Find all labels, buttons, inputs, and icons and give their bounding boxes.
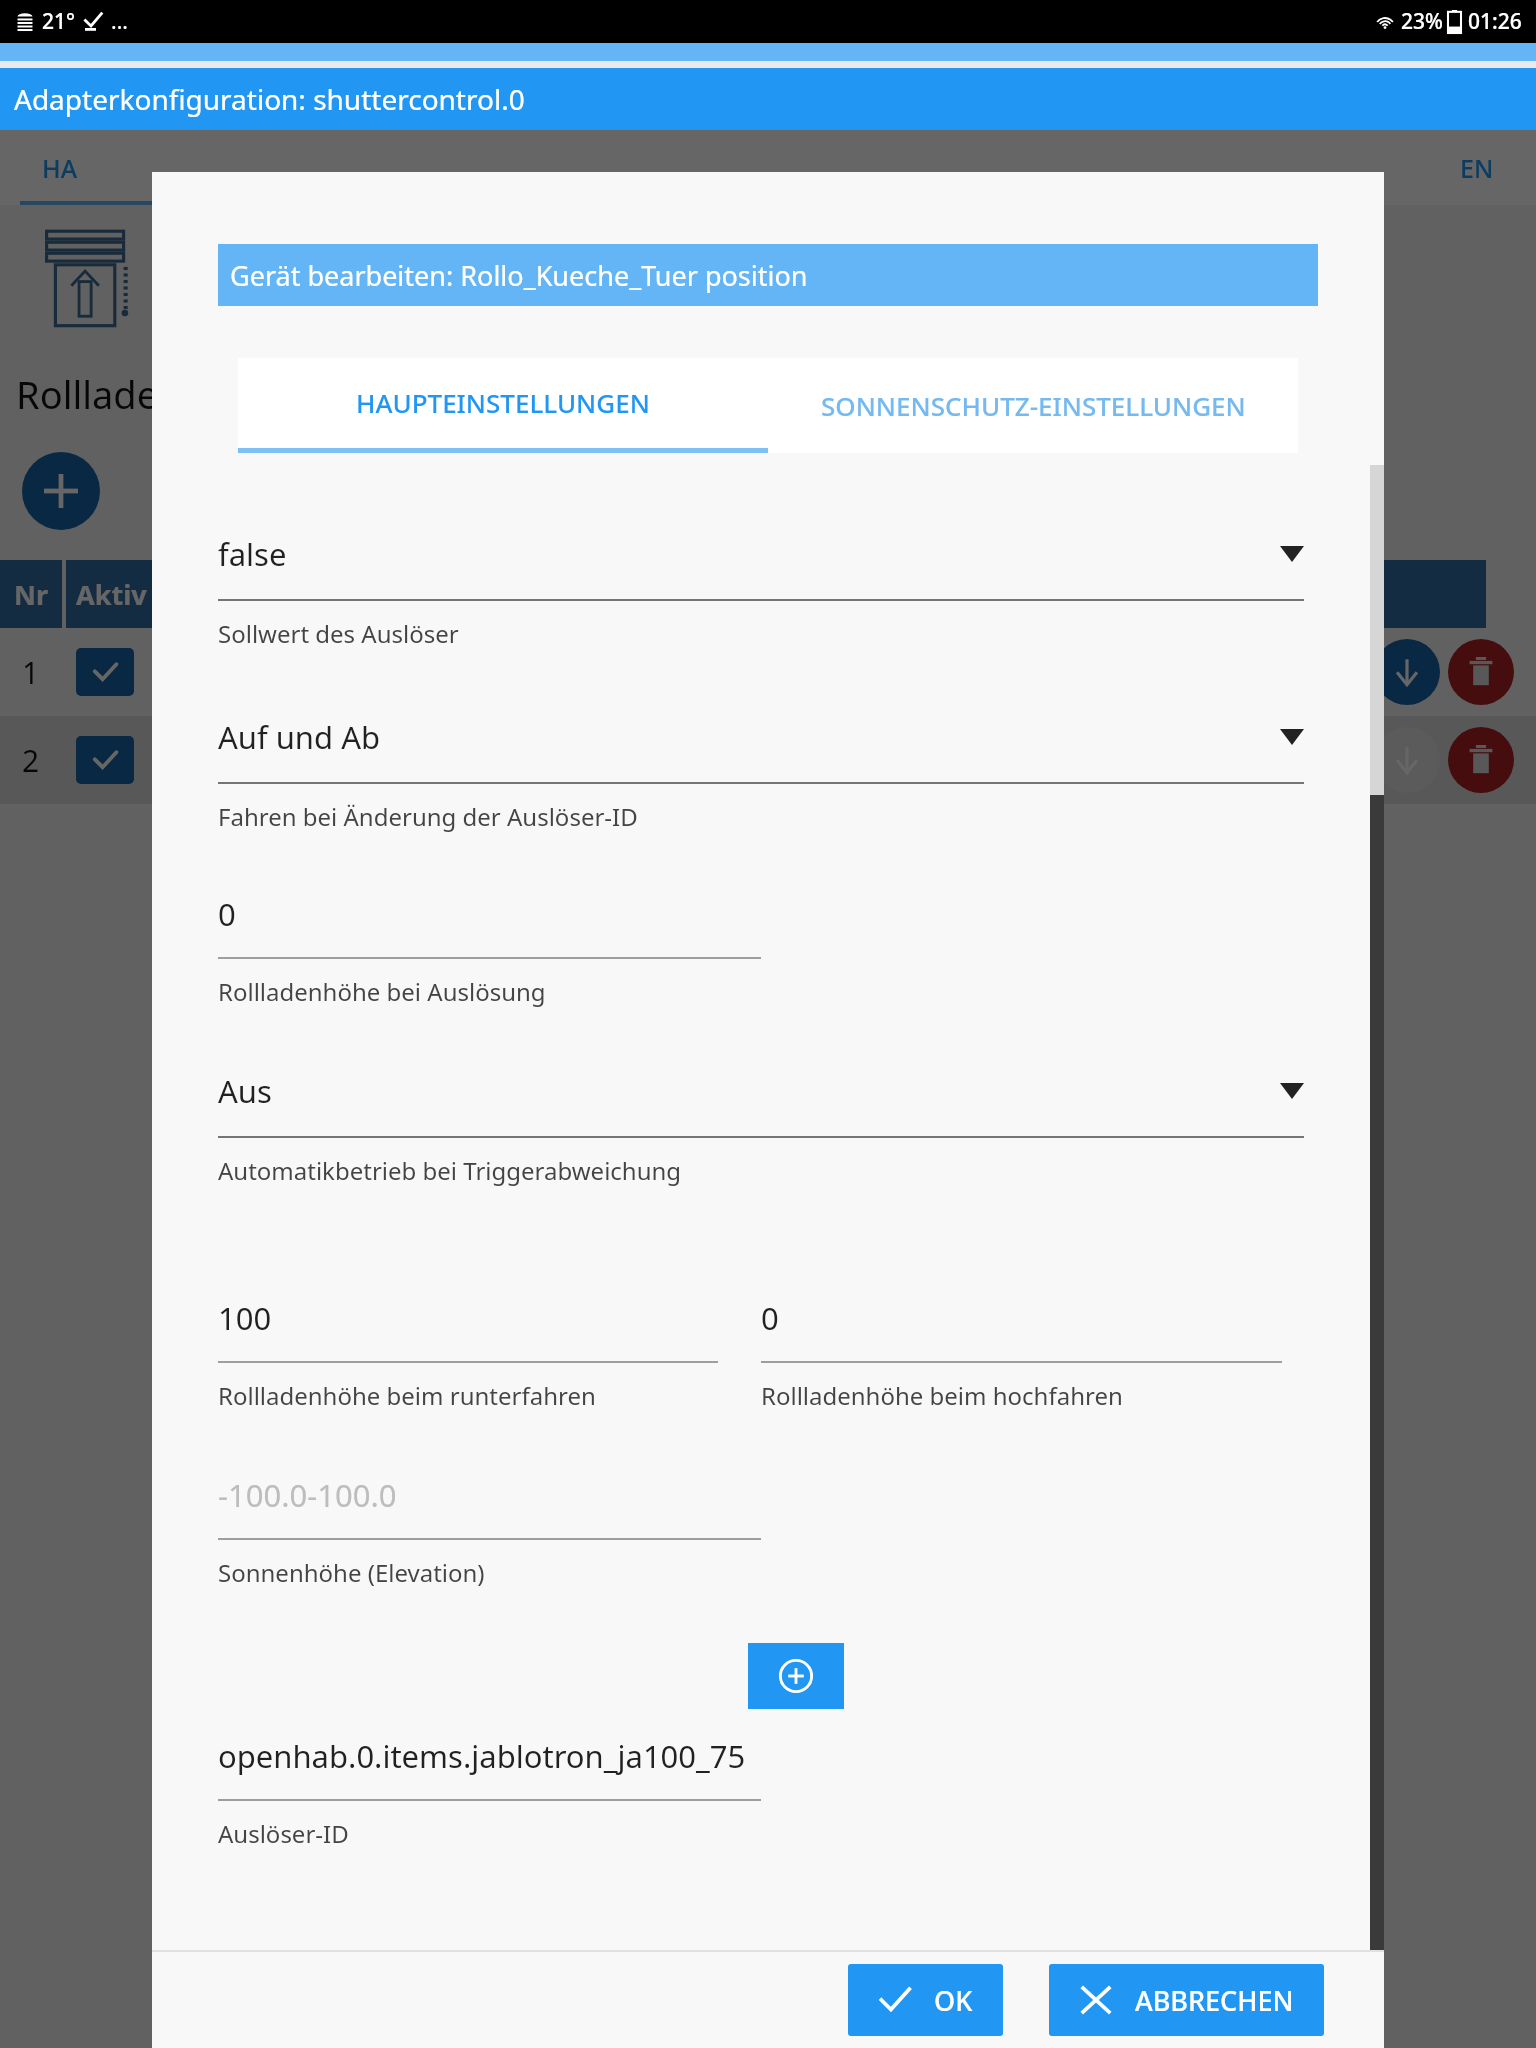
staticText: SONNENSCHUTZ-EINSTELLUNGEN <box>821 388 1246 423</box>
staticText: Sollwert des Auslöser <box>218 617 459 650</box>
button[interactable]: OK <box>848 1964 1003 2036</box>
button[interactable]: 2 <box>0 716 1536 804</box>
staticText: Nr <box>14 576 49 613</box>
staticText: ... <box>111 7 128 36</box>
staticText: Adapterkonfiguration: shuttercontrol.0 <box>14 80 525 118</box>
button[interactable]: -100.0-100.0 <box>218 1474 1304 1589</box>
staticText: Automatikbetrieb bei Triggerabweichung <box>218 1154 682 1187</box>
button[interactable]: openhab.0.items.jablotron_ja100_75 <box>218 1735 1304 1850</box>
staticText: 100 <box>218 1297 272 1339</box>
button[interactable]: Löschen <box>1448 727 1514 793</box>
staticText: Rollladenhöhe bei Auslösung <box>218 975 546 1008</box>
staticText: Auf und Ab <box>218 716 381 758</box>
staticText: Rollladenhöhe beim hochfahren <box>761 1379 1123 1412</box>
button[interactable]: ABBRECHEN <box>1049 1964 1324 2036</box>
button[interactable]: HAUPTEINSTELLUNGEN <box>238 358 768 453</box>
button[interactable]: Nach unten <box>1374 727 1440 793</box>
staticText: 01:26 <box>1468 7 1522 36</box>
staticText: 23% <box>1401 7 1443 36</box>
button[interactable]: Nach unten <box>1374 639 1440 705</box>
button[interactable]: false <box>218 533 1304 650</box>
staticText: Rolllade <box>16 368 159 420</box>
button[interactable]: SONNENSCHUTZ-EINSTELLUNGEN <box>768 358 1298 453</box>
staticText: 2 <box>22 740 40 781</box>
staticText: Fahren bei Änderung der Auslöser-ID <box>218 800 638 833</box>
button[interactable]: Löschen <box>1448 639 1514 705</box>
button[interactable]: 100 <box>218 1297 761 1412</box>
staticText: EN <box>1460 151 1494 185</box>
button[interactable]: Auf und Ab <box>218 716 1304 833</box>
staticText: openhab.0.items.jablotron_ja100_75 <box>218 1735 746 1777</box>
staticText: 21° <box>42 7 75 36</box>
staticText: ABBRECHEN <box>1135 1982 1294 2019</box>
button[interactable]: 0 <box>761 1297 1304 1412</box>
staticText: OK <box>934 1982 973 2019</box>
staticText: Rollladenhöhe beim runterfahren <box>218 1379 596 1412</box>
staticText: 0 <box>218 893 236 935</box>
button[interactable]: Aus <box>218 1070 1304 1187</box>
staticText: 1 <box>22 652 40 693</box>
staticText: HAUPTEINSTELLUNGEN <box>356 385 650 420</box>
staticText: Sonnenhöhe (Elevation) <box>218 1556 485 1589</box>
staticText: Aus <box>218 1070 272 1112</box>
staticText: HA <box>42 151 78 185</box>
button[interactable]: Hinzufügen <box>22 452 100 530</box>
staticText: Gerät bearbeiten: Rollo_Kueche_Tuer posi… <box>230 257 808 294</box>
button[interactable]: 0 <box>218 893 1304 1008</box>
button[interactable]: 1 <box>0 628 1536 716</box>
staticText: Aktiv <box>76 576 147 613</box>
staticText: false <box>218 533 287 575</box>
staticText: -100.0-100.0 <box>218 1474 397 1516</box>
button[interactable]: Hinzufügen <box>748 1643 844 1709</box>
staticText: 0 <box>761 1297 779 1339</box>
staticText: Auslöser-ID <box>218 1817 349 1850</box>
